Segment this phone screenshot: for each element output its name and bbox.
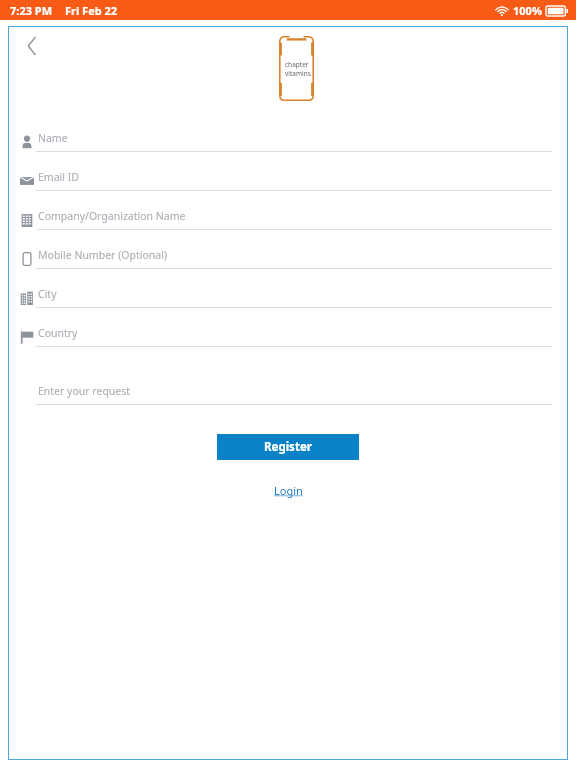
staticText: 100% xyxy=(513,3,542,18)
staticText: Company/Organization Name xyxy=(38,209,186,223)
staticText: Register xyxy=(264,439,312,455)
staticText: Login xyxy=(274,483,303,498)
staticText: Enter your request xyxy=(38,384,131,398)
staticText: Email ID xyxy=(38,170,79,184)
button[interactable]: Country xyxy=(8,317,568,356)
button[interactable]: City xyxy=(8,278,568,317)
button[interactable]: Mobile Number (Optional) xyxy=(8,239,568,278)
staticText: 7:23 PM xyxy=(10,3,53,18)
button[interactable]: Company/Organization Name xyxy=(8,200,568,239)
button[interactable]: Name xyxy=(8,122,568,161)
staticText: Name xyxy=(38,131,68,145)
staticText: chapter xyxy=(285,60,309,69)
button[interactable]: Email ID xyxy=(8,161,568,200)
staticText: Fri Feb 22 xyxy=(65,3,118,18)
staticText: City xyxy=(38,287,57,301)
button[interactable]: Enter your request xyxy=(8,375,568,414)
staticText: vitamins xyxy=(285,69,311,78)
button[interactable]: Back xyxy=(16,30,48,62)
staticText: Mobile Number (Optional) xyxy=(38,248,168,262)
button[interactable]: Login xyxy=(264,480,313,501)
staticText: Country xyxy=(38,326,78,340)
button[interactable]: Register xyxy=(217,434,359,460)
